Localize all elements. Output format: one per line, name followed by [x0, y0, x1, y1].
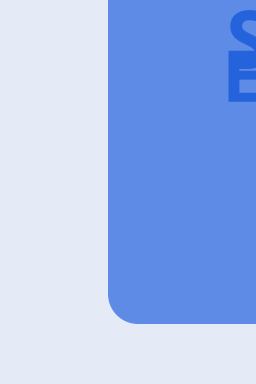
staticText: E [222, 26, 256, 122]
staticText: S [226, 0, 256, 90]
